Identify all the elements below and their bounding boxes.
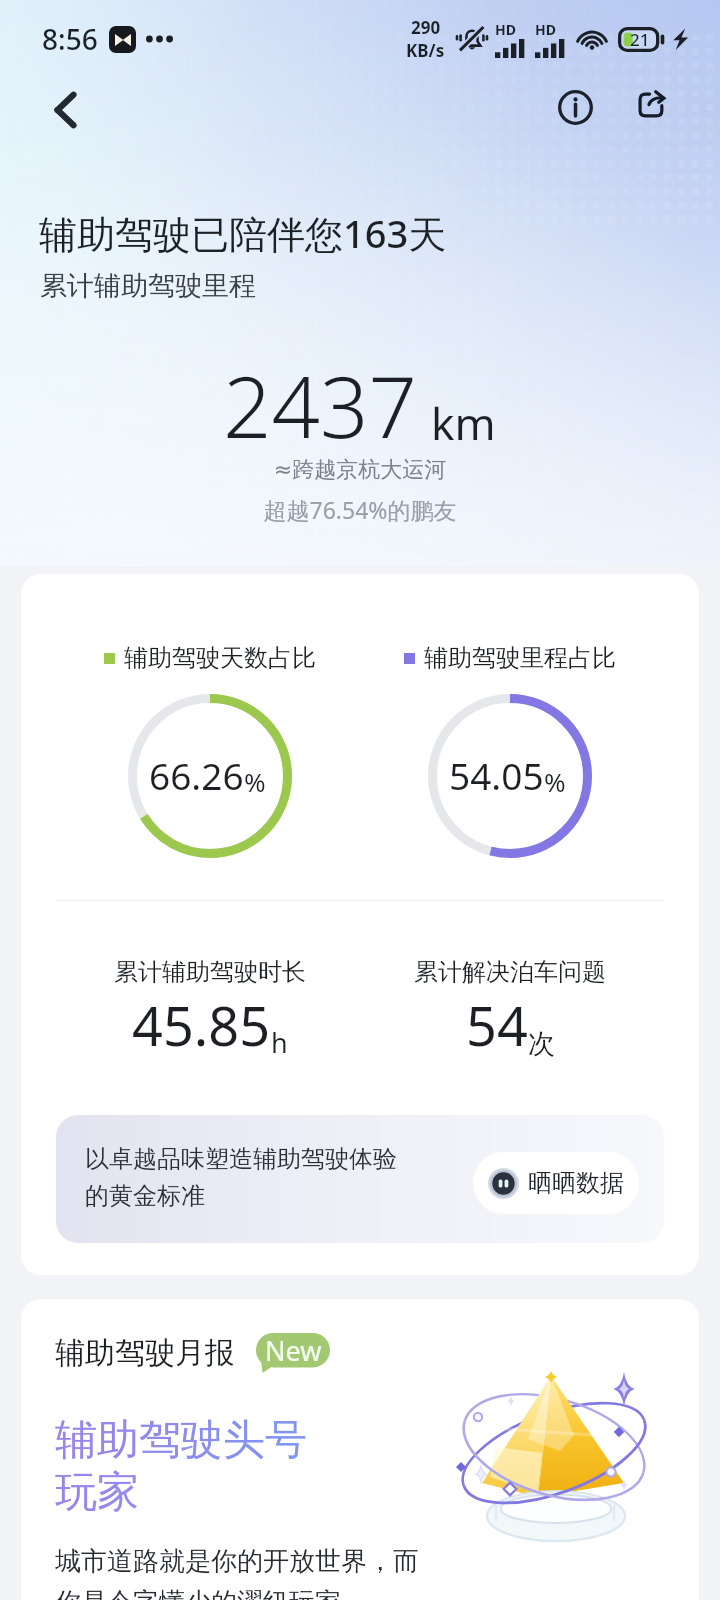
staticText: 辅助驾驶月报 xyxy=(55,1334,235,1372)
staticText: 2437 xyxy=(223,347,418,463)
staticText: 次 xyxy=(528,1027,555,1061)
staticText: 的黄金标准 xyxy=(85,1181,205,1211)
staticText: 辅助驾驶头号 xyxy=(55,1414,307,1467)
staticText: 54.05 xyxy=(449,750,544,800)
staticText: HD xyxy=(535,20,556,39)
staticText: % xyxy=(244,764,266,799)
staticText: KB/s xyxy=(406,39,445,62)
staticText: 累计解决泊车问题 xyxy=(414,957,606,987)
staticText: 辅助驾驶已陪伴您163天 xyxy=(39,207,447,259)
staticText: 累计辅助驾驶时长 xyxy=(114,957,306,987)
button[interactable]: 晒晒数据 xyxy=(473,1152,639,1214)
staticText: 45.85 xyxy=(132,988,271,1062)
staticText: 21 xyxy=(630,28,650,51)
staticText: 你是今字懂少的濯纽玩家 xyxy=(55,1586,341,1600)
staticText: 超越76.54%的鹏友 xyxy=(0,494,720,525)
staticText: 辅助驾驶里程占比 xyxy=(424,643,616,673)
staticText: 66.26 xyxy=(149,750,244,800)
staticText: 290 xyxy=(411,16,441,39)
staticText: 以卓越品味塑造辅助驾驶体验 xyxy=(85,1144,397,1174)
staticText: 累计辅助驾驶里程 xyxy=(40,269,256,303)
staticText: % xyxy=(544,764,566,799)
button[interactable]: Info xyxy=(542,74,608,140)
staticText: ≈跨越京杭大运河 xyxy=(0,456,720,484)
staticText: New xyxy=(265,1332,322,1369)
staticText: 54 xyxy=(466,988,528,1062)
staticText: 城市道路就是你的开放世界，而 xyxy=(55,1545,419,1578)
staticText: 8:56 xyxy=(42,20,98,58)
button[interactable]: Share xyxy=(620,74,686,140)
staticText: 玩家 xyxy=(55,1466,139,1519)
staticText: km xyxy=(431,393,496,453)
staticText: 晒晒数据 xyxy=(528,1168,624,1198)
staticText: HD xyxy=(495,20,516,39)
staticText: 辅助驾驶天数占比 xyxy=(124,643,316,673)
staticText: h xyxy=(271,1024,288,1061)
button[interactable]: Back xyxy=(25,70,105,150)
